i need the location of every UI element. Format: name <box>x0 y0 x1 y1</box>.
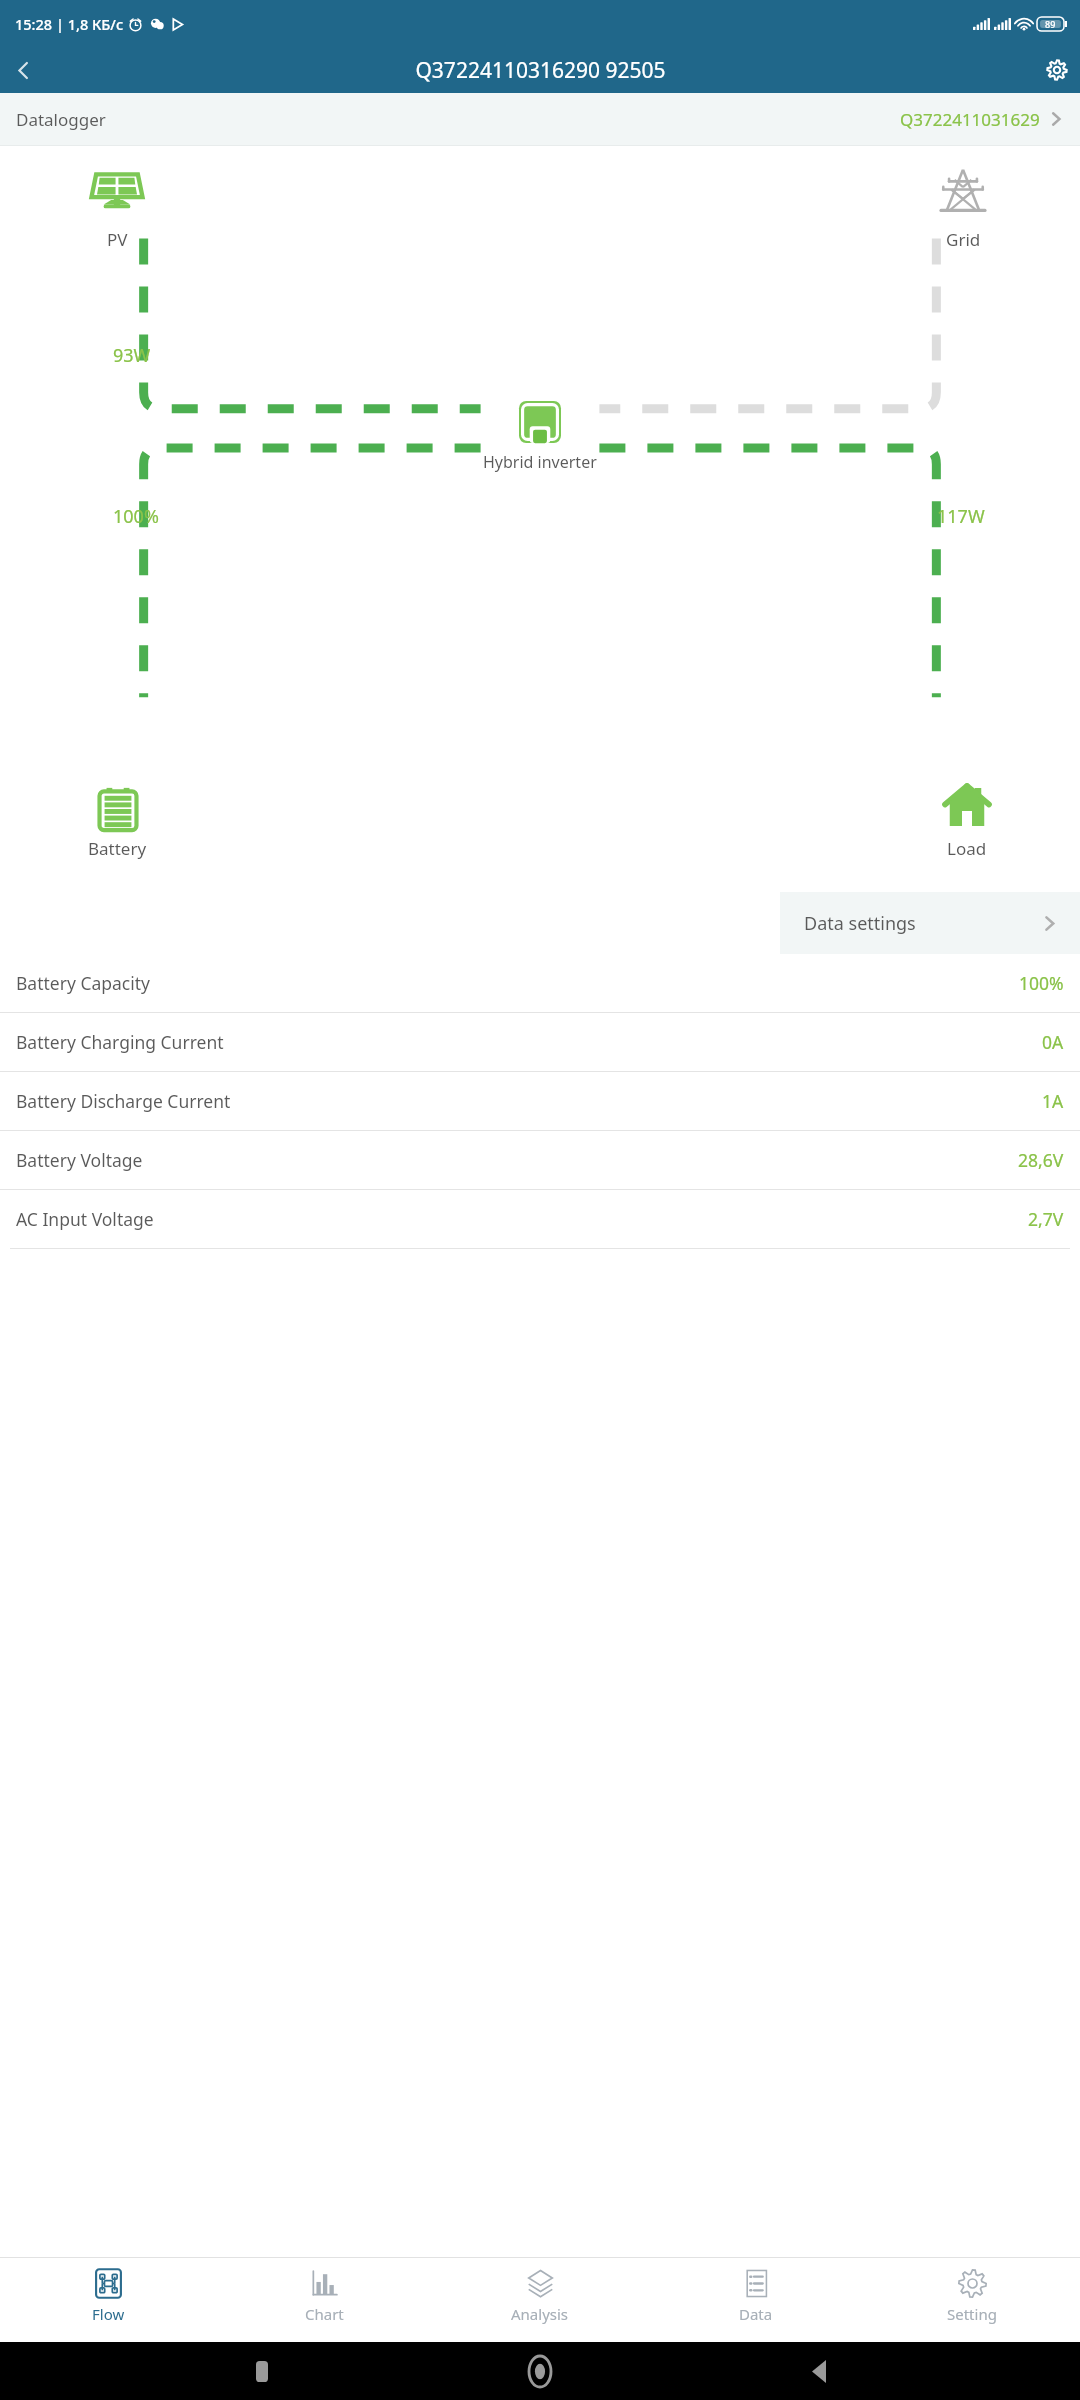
staticText: 1A <box>1042 1089 1064 1113</box>
button[interactable]: Datalogger <box>0 93 1080 145</box>
button[interactable]: Data settings <box>780 892 1080 954</box>
staticText: 0A <box>1042 1030 1064 1054</box>
staticText: Q37224110316290 92505 <box>415 56 666 85</box>
button[interactable]: Battery Discharge Current <box>0 1072 1080 1130</box>
staticText: PV <box>107 228 128 251</box>
staticText: Battery Voltage <box>16 1148 143 1172</box>
button[interactable]: Back <box>0 47 46 93</box>
staticText: Datalogger <box>16 108 106 131</box>
staticText: 117W <box>937 504 985 529</box>
button[interactable]: Recents <box>247 2356 277 2386</box>
button[interactable]: Flow <box>0 2258 216 2342</box>
button[interactable]: Home <box>523 2354 557 2388</box>
button[interactable]: AC Input Voltage <box>0 1190 1080 1248</box>
staticText: Data settings <box>804 911 916 936</box>
staticText: Battery Charging Current <box>16 1030 224 1054</box>
button[interactable]: Settings <box>1034 47 1080 93</box>
button[interactable]: Back <box>804 2356 834 2386</box>
staticText: AC Input Voltage <box>16 1207 154 1231</box>
button[interactable]: Battery Voltage <box>0 1131 1080 1189</box>
staticText: Flow <box>92 2304 125 2324</box>
button[interactable]: Data <box>648 2258 864 2342</box>
button[interactable]: Analysis <box>432 2258 648 2342</box>
button[interactable]: Chart <box>216 2258 432 2342</box>
staticText: 28,6V <box>1018 1148 1064 1172</box>
staticText: Grid <box>946 228 981 251</box>
staticText: 89 <box>1045 18 1056 30</box>
staticText: Chart <box>305 2304 344 2324</box>
staticText: Battery Capacity <box>16 971 151 995</box>
staticText: 100% <box>113 504 159 529</box>
staticText: Q3722411031629 <box>900 108 1040 131</box>
button[interactable]: Setting <box>864 2258 1080 2342</box>
staticText: Data <box>739 2304 773 2324</box>
staticText: Setting <box>947 2304 997 2324</box>
staticText: Battery Discharge Current <box>16 1089 231 1113</box>
staticText: 15:28 | 1,8 КБ/с <box>15 14 124 34</box>
button[interactable]: Battery Capacity <box>0 954 1080 1012</box>
button[interactable]: Battery Charging Current <box>0 1013 1080 1071</box>
staticText: 93W <box>113 343 151 368</box>
staticText: Battery <box>88 837 147 860</box>
staticText: Hybrid inverter <box>483 451 597 473</box>
staticText: Load <box>947 837 987 860</box>
staticText: 100% <box>1019 971 1064 995</box>
staticText: Analysis <box>511 2304 569 2324</box>
staticText: 2,7V <box>1028 1207 1064 1231</box>
